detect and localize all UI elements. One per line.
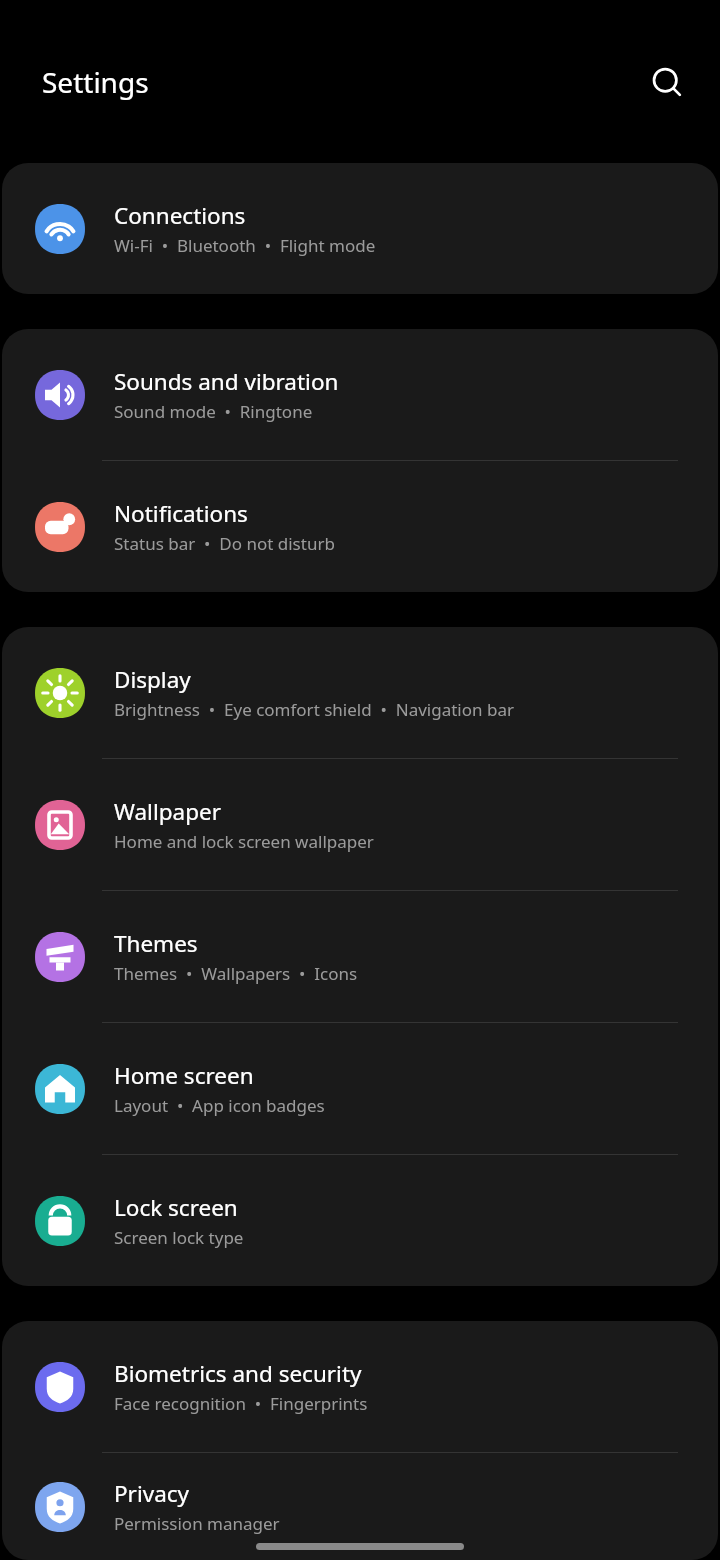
staticText: Permission manager [114, 1512, 280, 1535]
button[interactable]: Themes [2, 891, 718, 1022]
staticText: Privacy [114, 1478, 190, 1509]
staticText: Screen lock type [114, 1226, 244, 1249]
staticText: Wallpaper [114, 796, 221, 827]
button[interactable]: Connections [2, 163, 718, 294]
staticText: Display [114, 664, 191, 695]
button[interactable]: Lock screen [2, 1155, 718, 1286]
staticText: Biometrics and security [114, 1358, 362, 1389]
staticText: Face recognition • Fingerprints [114, 1392, 368, 1415]
staticText: Themes [114, 928, 198, 959]
staticText: Status bar • Do not disturb [114, 532, 335, 555]
staticText: Sounds and vibration [114, 366, 339, 397]
button[interactable]: Privacy [2, 1453, 718, 1560]
button[interactable]: Biometrics and security [2, 1321, 718, 1452]
staticText: Themes • Wallpapers • Icons [114, 962, 358, 985]
staticText: Layout • App icon badges [114, 1094, 325, 1117]
staticText: Wi-Fi • Bluetooth • Flight mode [114, 234, 376, 257]
button[interactable]: Display [2, 627, 718, 758]
staticText: Sound mode • Ringtone [114, 400, 313, 423]
staticText: Notifications [114, 498, 248, 529]
button[interactable]: Wallpaper [2, 759, 718, 890]
button[interactable]: Search [641, 56, 693, 108]
staticText: Settings [42, 63, 149, 101]
staticText: Home screen [114, 1060, 254, 1091]
staticText: Connections [114, 200, 246, 231]
button[interactable]: Notifications [2, 461, 718, 592]
staticText: Brightness • Eye comfort shield • Naviga… [114, 698, 514, 721]
staticText: Lock screen [114, 1192, 238, 1223]
button[interactable]: Home screen [2, 1023, 718, 1154]
button[interactable]: Sounds and vibration [2, 329, 718, 460]
staticText: Home and lock screen wallpaper [114, 830, 374, 853]
